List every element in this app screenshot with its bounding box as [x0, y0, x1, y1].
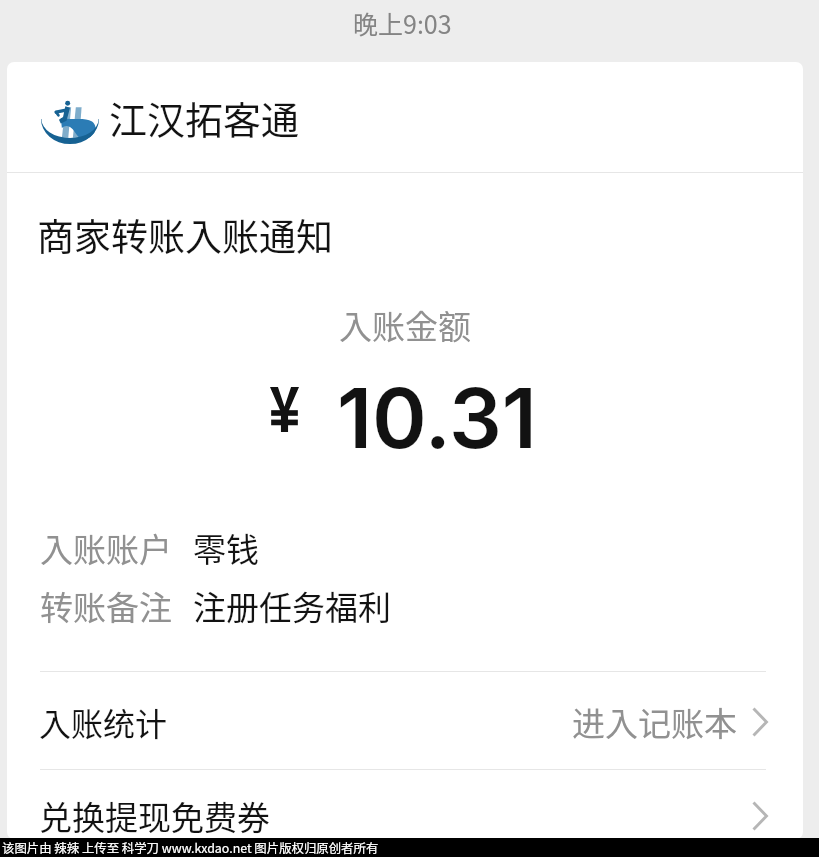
button[interactable]: 江汉拓客通 logo	[7, 62, 803, 172]
staticText: 兑换提现免费券	[39, 792, 270, 839]
button[interactable]: 入账统计	[7, 672, 803, 771]
staticText: 10.31	[337, 368, 537, 468]
other: Open	[752, 708, 768, 736]
other: 江汉拓客通 logo	[41, 100, 99, 145]
staticText: 江汉拓客通	[109, 90, 300, 145]
staticText: 进入记账本	[572, 698, 737, 746]
staticText: 该图片由 辣辣 上传至 科学刀 www.kxdao.net 图片版权归原创者所有	[2, 839, 379, 857]
staticText: 入账统计	[39, 699, 168, 745]
staticText: 零钱	[193, 524, 259, 572]
staticText: 转账备注	[40, 582, 172, 630]
other: Open	[752, 802, 768, 830]
staticText: 商家转账入账通知	[37, 208, 333, 262]
button[interactable]: 兑换提现免费券	[7, 766, 803, 839]
staticText: 注册任务福利	[193, 582, 391, 630]
staticText: 入账账户	[40, 524, 172, 572]
staticText: 入账金额	[339, 301, 471, 349]
staticText: 晚上9:03	[353, 5, 452, 41]
